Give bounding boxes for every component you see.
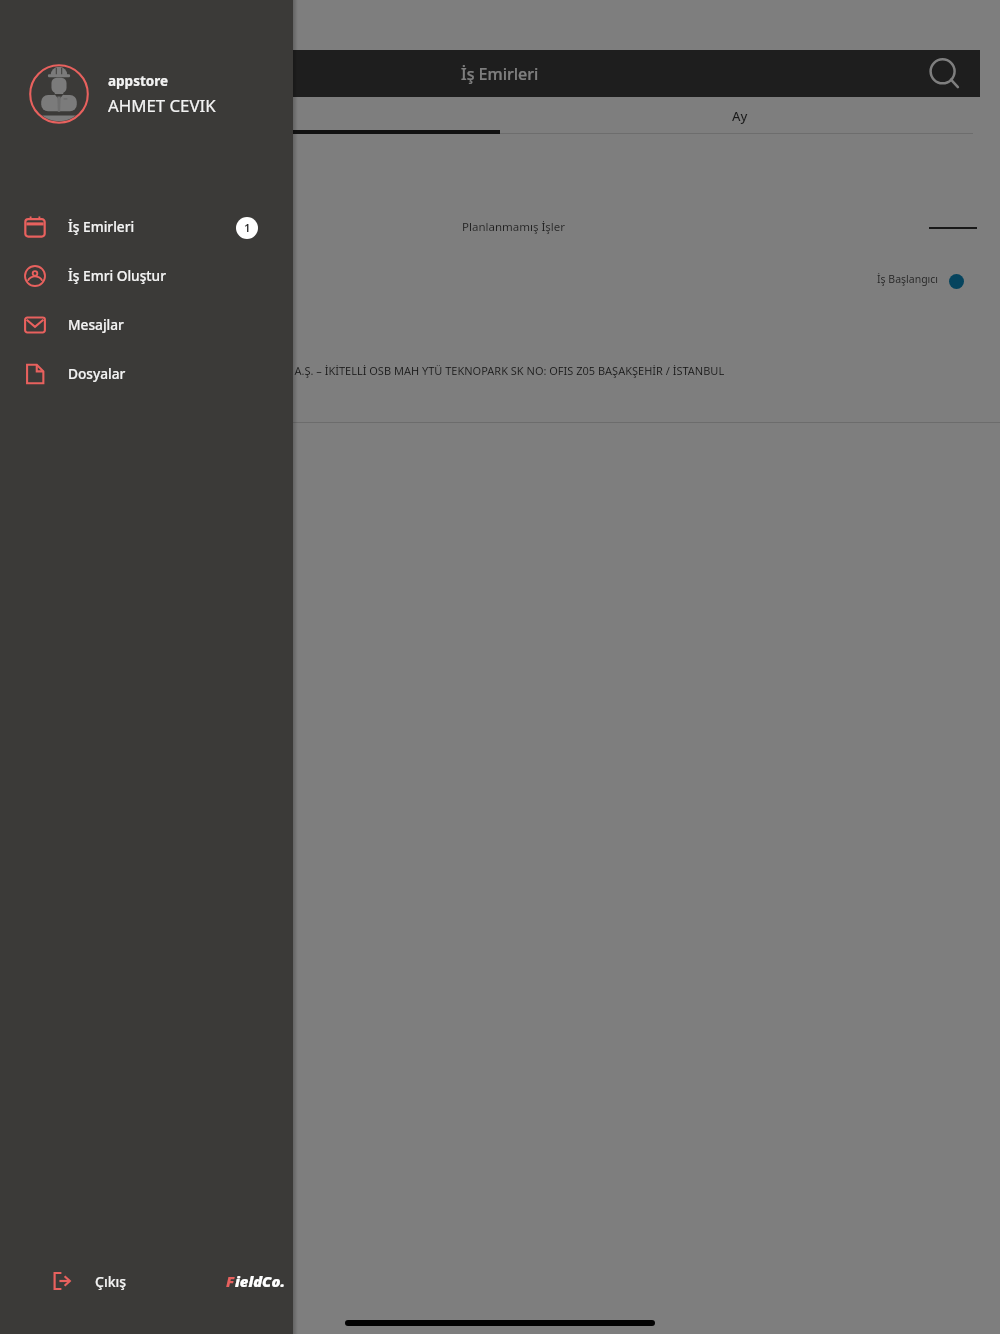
staticText: Dosyalar	[68, 364, 126, 383]
button[interactable]: Hafta	[20, 97, 500, 134]
button[interactable]: Ay	[500, 97, 980, 134]
button[interactable]: Dosyalar	[0, 349, 293, 398]
staticText: appstore	[108, 72, 169, 90]
button[interactable]: appstore	[0, 64, 293, 124]
staticText: Çıkış	[95, 1272, 127, 1291]
button[interactable]: İş Emri Oluştur	[0, 251, 293, 300]
button[interactable]: Çıkış	[51, 1271, 127, 1291]
staticText: F	[226, 1271, 235, 1291]
staticText: İş Emirleri	[68, 217, 135, 236]
staticText: İş Emri Oluştur	[68, 266, 166, 285]
staticText: İş Emirleri	[461, 63, 539, 85]
button[interactable]: Close navigation drawer	[0, 0, 1000, 1334]
button[interactable]: Search	[924, 53, 966, 95]
staticText: ieldCo.	[235, 1271, 285, 1291]
staticText: Planlanmamış İşler	[462, 219, 566, 235]
button[interactable]: Planlanmamış İşler	[0, 134, 1000, 423]
button[interactable]: FieldCo	[226, 1271, 285, 1291]
button[interactable]: Mesajlar	[0, 300, 293, 349]
staticText: 1	[244, 220, 251, 236]
staticText: FIELDCO YAZILIM A.Ş. – İKİTELLİ OSB MAH …	[202, 363, 725, 378]
staticText: Ay	[732, 107, 748, 125]
staticText: İş Başlangıcı	[877, 272, 939, 286]
staticText: Mesajlar	[68, 315, 124, 334]
staticText: AHMET CEVIK	[108, 94, 216, 117]
button[interactable]: İş Emirleri	[0, 202, 293, 251]
